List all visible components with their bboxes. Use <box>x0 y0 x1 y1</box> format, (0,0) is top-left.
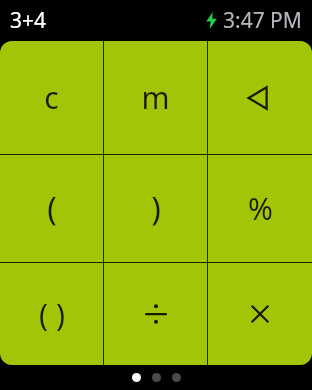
staticText: ) <box>151 187 161 231</box>
button[interactable]: ( ) <box>0 263 103 365</box>
button[interactable]: Backspace <box>208 41 312 154</box>
staticText: 3:47 PM <box>223 6 302 35</box>
staticText: ( <box>47 187 57 231</box>
button[interactable]: ( <box>0 155 103 262</box>
button[interactable]: ) <box>104 155 207 262</box>
button[interactable]: c <box>0 41 103 154</box>
staticText: ( ) <box>39 294 65 335</box>
button[interactable]: m <box>104 41 207 154</box>
staticText: c <box>44 77 59 118</box>
staticText: 3+4 <box>10 6 47 35</box>
button[interactable]: Multiply <box>208 263 312 365</box>
staticText: % <box>248 188 273 229</box>
button[interactable]: Divide <box>104 263 207 365</box>
staticText: m <box>141 77 170 118</box>
button[interactable]: % <box>208 155 312 262</box>
